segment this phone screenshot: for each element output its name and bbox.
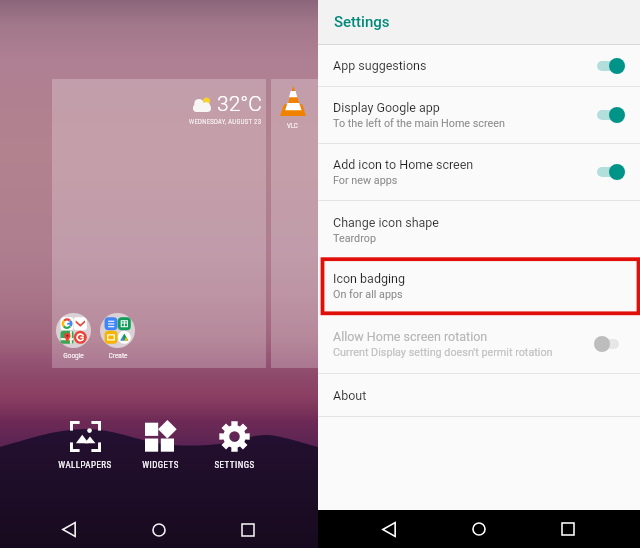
button[interactable]: App suggestions <box>597 54 619 78</box>
staticText: Create <box>108 351 128 360</box>
staticText: App suggestions <box>333 58 427 73</box>
staticText: Display Google app <box>333 100 440 115</box>
button[interactable]: SETTINGS <box>194 419 274 471</box>
button[interactable]: VLC <box>271 86 314 130</box>
button[interactable]: Allow Home screen rotation <box>597 332 619 356</box>
button[interactable]: 32°C <box>52 79 266 368</box>
button[interactable]: About <box>318 374 640 416</box>
staticText: VLC <box>287 122 298 130</box>
button[interactable]: Recent apps <box>231 511 265 548</box>
button[interactable]: WALLPAPERS <box>45 419 125 471</box>
button[interactable]: WIDGETS <box>120 419 200 471</box>
staticText: On for all apps <box>333 288 403 301</box>
button[interactable]: Home <box>142 511 176 548</box>
button[interactable]: Create <box>100 313 135 360</box>
staticText: Teardrop <box>333 232 376 245</box>
staticText: For new apps <box>333 174 398 187</box>
button[interactable]: Google <box>56 313 91 360</box>
button[interactable]: Add icon to Home screen <box>318 144 640 200</box>
button[interactable]: Home <box>462 510 496 548</box>
button[interactable]: Back <box>372 510 406 548</box>
staticText: To the left of the main Home screen <box>333 117 505 130</box>
staticText: WALLPAPERS <box>58 460 112 471</box>
button[interactable]: Add icon to Home screen <box>597 160 619 184</box>
staticText: WEDNESDAY, AUGUST 23 <box>189 118 262 126</box>
button[interactable]: Change icon shape <box>318 201 640 258</box>
button[interactable]: Display Google app <box>318 87 640 143</box>
staticText: Add icon to Home screen <box>333 157 474 172</box>
button[interactable]: Display Google app <box>597 103 619 127</box>
staticText: Icon badging <box>333 271 405 286</box>
button[interactable]: App suggestions <box>318 45 640 86</box>
button[interactable]: Recent apps <box>551 510 585 548</box>
staticText: Allow Home screen rotation <box>333 329 488 344</box>
staticText: Settings <box>334 13 390 31</box>
staticText: Current Display setting doesn't permit r… <box>333 346 553 359</box>
staticText: Google <box>63 351 84 360</box>
staticText: SETTINGS <box>214 460 255 471</box>
button[interactable]: Allow Home screen rotation <box>318 314 640 373</box>
button[interactable]: Back <box>52 511 86 548</box>
staticText: About <box>333 388 367 403</box>
staticText: WIDGETS <box>142 460 179 471</box>
button[interactable]: Icon badging <box>318 258 640 314</box>
staticText: 32°C <box>217 92 262 117</box>
staticText: Change icon shape <box>333 215 439 230</box>
